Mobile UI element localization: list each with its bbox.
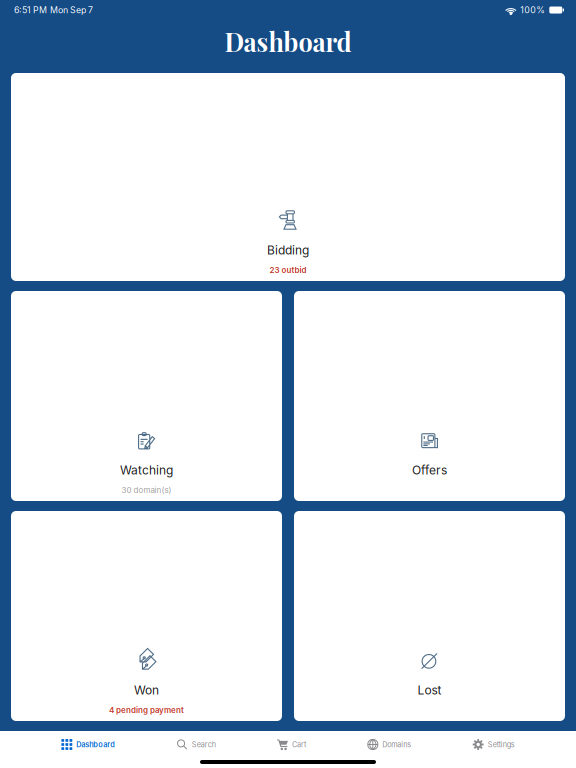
staticText: Search xyxy=(192,740,216,749)
staticText: Settings xyxy=(488,740,515,749)
staticText: Dashboard xyxy=(224,25,351,58)
button[interactable]: Bidding xyxy=(11,73,565,281)
staticText: Won xyxy=(134,683,159,697)
button[interactable]: Domains xyxy=(367,731,411,758)
button[interactable]: Settings xyxy=(473,731,515,758)
staticText: Dashboard xyxy=(76,740,115,749)
staticText: Offers xyxy=(412,463,447,477)
button[interactable]: Search xyxy=(177,731,216,758)
staticText: 100% xyxy=(520,5,545,15)
button[interactable]: Lost xyxy=(294,511,565,721)
staticText: Bidding xyxy=(267,243,309,257)
staticText: 30 domain(s) xyxy=(121,485,171,495)
staticText: 6:51 PM xyxy=(14,5,47,15)
button[interactable]: Cart xyxy=(277,731,306,758)
staticText: 23 outbid xyxy=(269,265,306,275)
button[interactable]: Offers xyxy=(294,291,565,501)
staticText: Mon Sep 7 xyxy=(50,5,93,15)
staticText: Cart xyxy=(292,740,306,749)
button[interactable]: Dashboard xyxy=(61,731,115,758)
staticText: Domains xyxy=(382,740,411,749)
staticText: Lost xyxy=(417,683,441,697)
staticText: Watching xyxy=(120,463,173,477)
button[interactable]: Won xyxy=(11,511,282,721)
staticText: 4 pending payment xyxy=(109,705,184,715)
button[interactable]: Watching xyxy=(11,291,282,501)
